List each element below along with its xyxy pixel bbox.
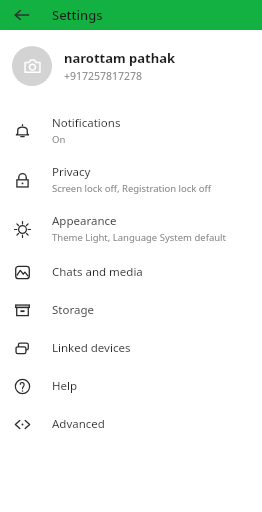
button[interactable]: narottam pathak [0, 42, 262, 90]
staticText: Notifications [52, 115, 121, 131]
staticText: Screen lock off, Registration lock off [52, 182, 212, 195]
staticText: Advanced [52, 416, 105, 432]
button[interactable]: Back [8, 1, 36, 29]
staticText: Settings [52, 6, 103, 24]
button[interactable]: Appearance [0, 204, 262, 253]
staticText: Privacy [52, 164, 91, 180]
button[interactable]: Storage [0, 291, 262, 329]
staticText: Theme Light, Language System default [52, 231, 227, 244]
button[interactable]: Linked devices [0, 329, 262, 367]
button[interactable]: Notifications [0, 106, 262, 155]
staticText: Chats and media [52, 264, 143, 280]
staticText: Storage [52, 302, 94, 318]
button[interactable]: Help [0, 367, 262, 405]
staticText: Help [52, 378, 78, 394]
staticText: Appearance [52, 213, 117, 229]
staticText: narottam pathak [64, 49, 175, 67]
staticText: Linked devices [52, 340, 131, 356]
button[interactable]: Advanced [0, 405, 262, 443]
staticText: On [52, 133, 66, 146]
button[interactable]: Privacy [0, 155, 262, 204]
staticText: +917257817278 [64, 69, 143, 83]
button[interactable]: Chats and media [0, 253, 262, 291]
